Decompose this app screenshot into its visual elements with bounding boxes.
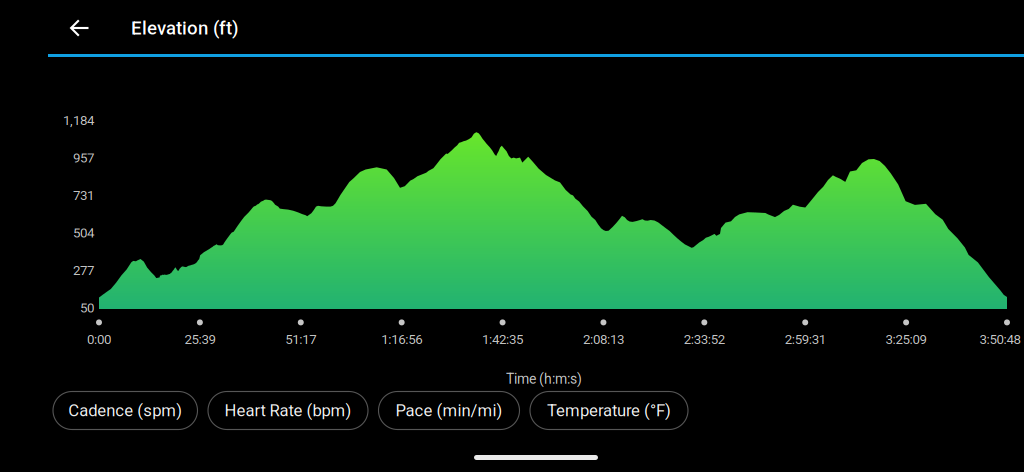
- staticText: 50: [80, 300, 94, 316]
- staticText: 1:16:56: [381, 332, 422, 347]
- staticText: Cadence (spm): [68, 401, 182, 420]
- staticText: 3:50:48: [979, 332, 1020, 347]
- staticText: 2:59:31: [785, 332, 826, 347]
- button[interactable]: Cadence (spm): [53, 391, 197, 429]
- staticText: Time (h:m:s): [506, 371, 582, 387]
- staticText: 2:08:13: [583, 332, 624, 347]
- button[interactable]: Pace (min/mi): [378, 391, 519, 429]
- staticText: 731: [73, 188, 94, 203]
- button[interactable]: Back: [57, 5, 103, 51]
- staticText: Pace (min/mi): [395, 401, 502, 420]
- button[interactable]: Heart Rate (bpm): [208, 391, 368, 429]
- staticText: 957: [73, 150, 94, 166]
- staticText: 3:25:09: [886, 332, 927, 347]
- staticText: Elevation (ft): [131, 17, 239, 39]
- button[interactable]: Temperature (°F): [530, 391, 688, 429]
- staticText: 0:00: [87, 332, 111, 347]
- staticText: 1,184: [63, 113, 94, 128]
- staticText: 2:33:52: [684, 332, 725, 347]
- staticText: 1:42:35: [482, 332, 523, 347]
- staticText: 277: [73, 263, 94, 278]
- staticText: Temperature (°F): [547, 401, 671, 420]
- staticText: Heart Rate (bpm): [224, 401, 351, 420]
- staticText: 25:39: [184, 332, 215, 347]
- staticText: 51:17: [285, 332, 316, 347]
- staticText: 504: [73, 225, 94, 241]
